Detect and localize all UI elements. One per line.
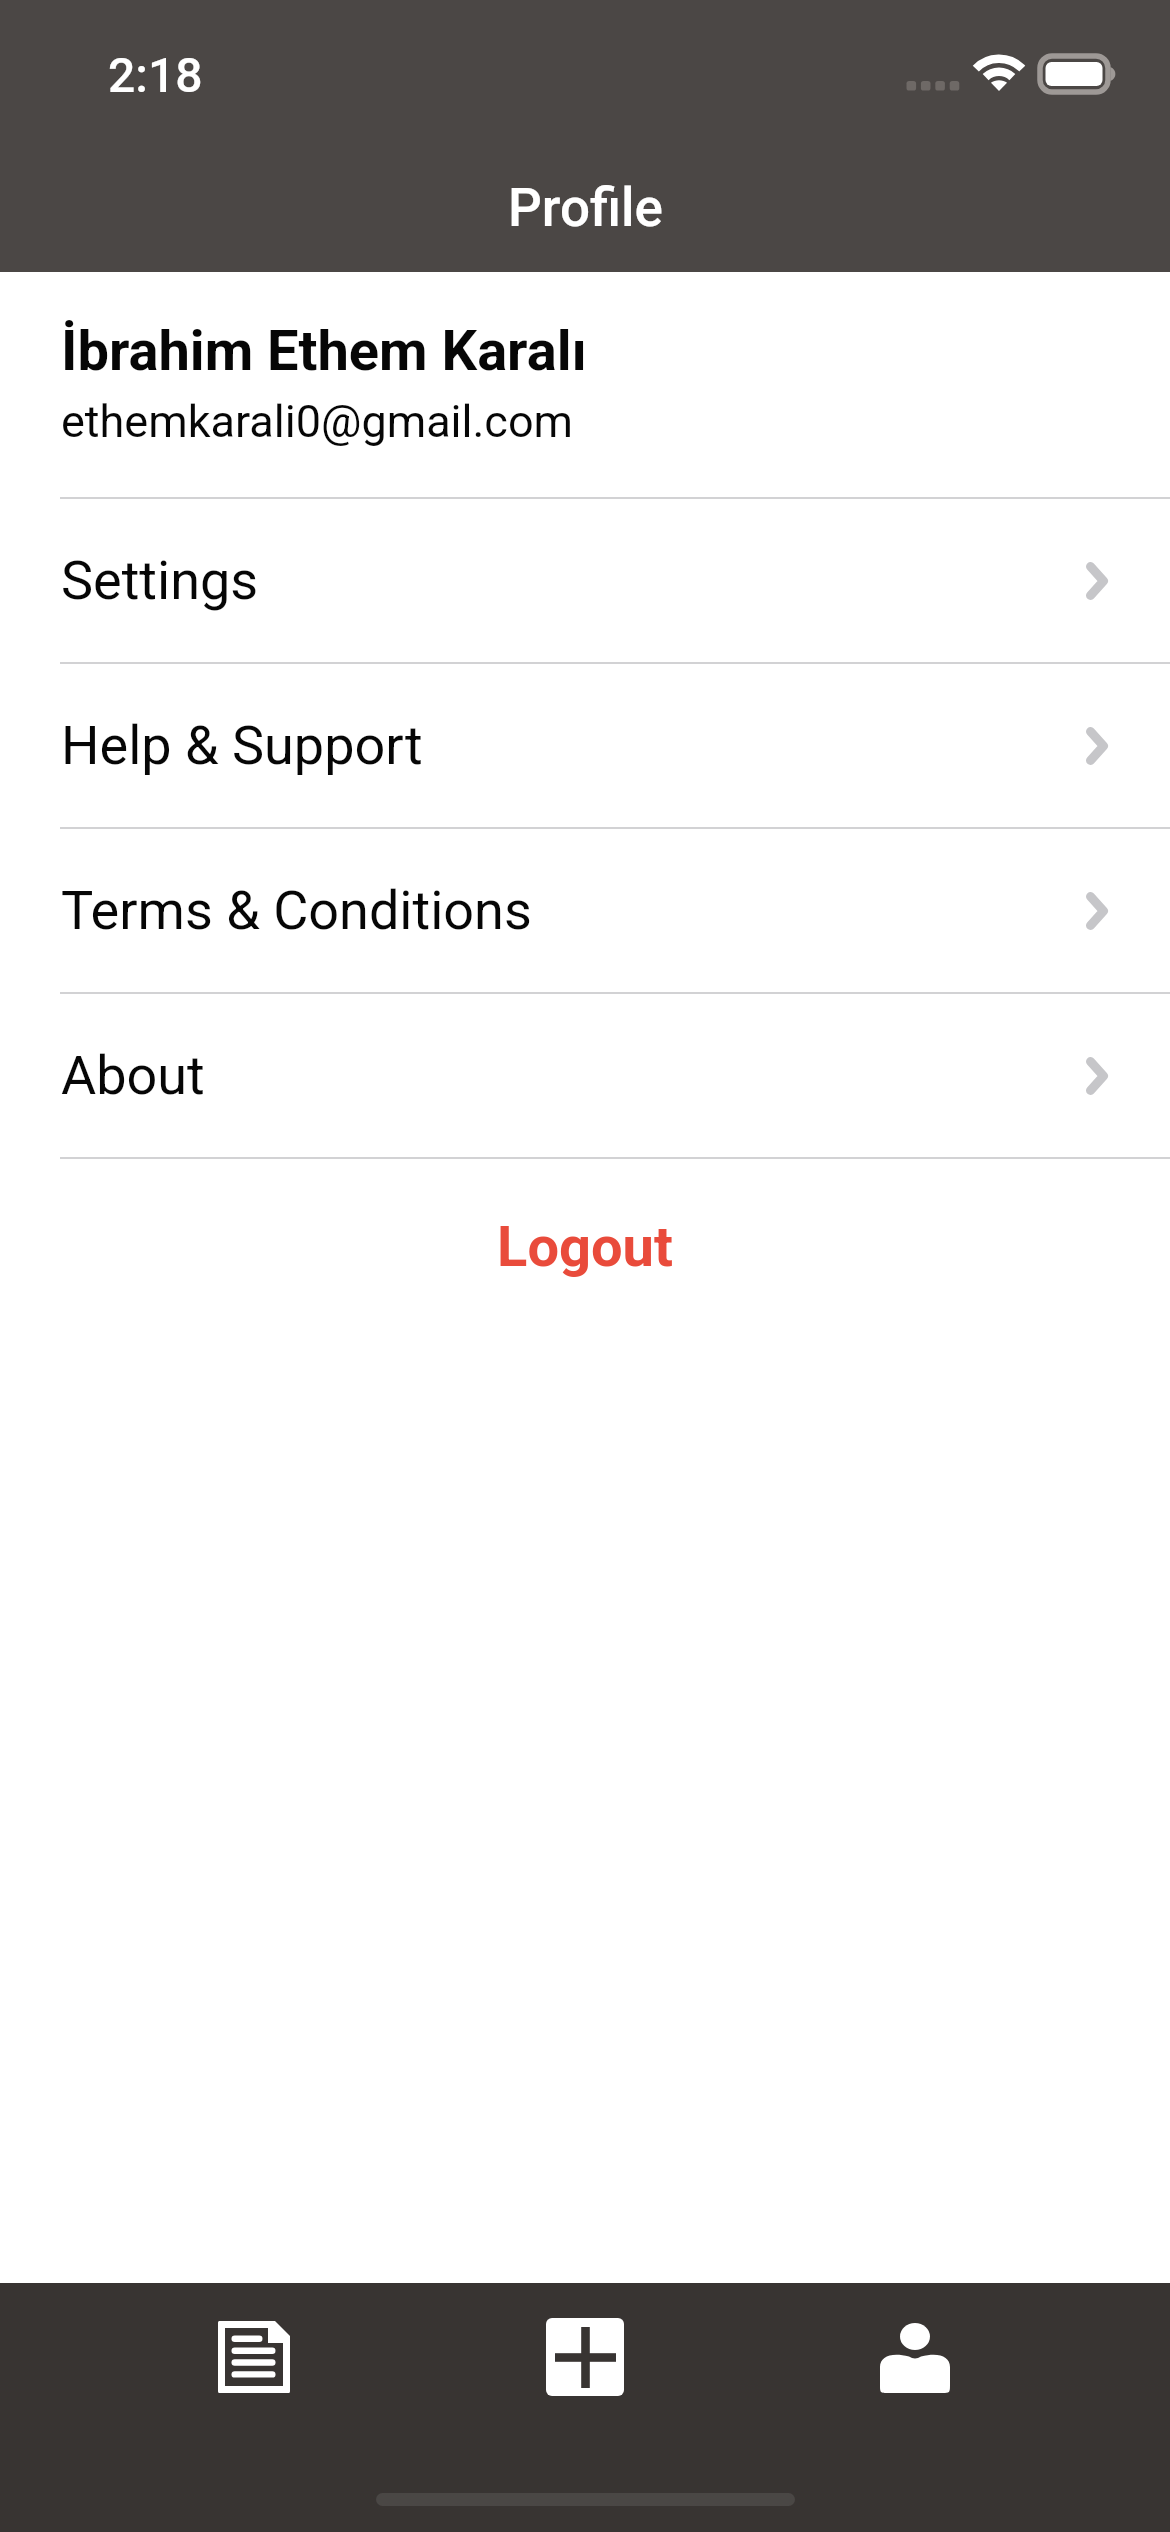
staticText: About	[61, 1044, 205, 1107]
staticText: Profile	[508, 177, 663, 239]
staticText: İbrahim Ethem Karalı	[61, 318, 587, 384]
button[interactable]: About	[0, 994, 1170, 1157]
button[interactable]: Add	[505, 2317, 665, 2397]
staticText: 2:18	[108, 47, 203, 103]
button[interactable]: Terms & Conditions	[0, 829, 1170, 992]
button[interactable]: Logout	[0, 1159, 1170, 1339]
button[interactable]: Help & Support	[0, 664, 1170, 827]
staticText: ethemkarali0@gmail.com	[61, 395, 574, 448]
button[interactable]: Profile	[835, 2318, 995, 2398]
button[interactable]: Documents	[174, 2317, 334, 2397]
button[interactable]: Settings	[0, 499, 1170, 662]
staticText: Settings	[61, 549, 259, 612]
staticText: Help & Support	[61, 714, 423, 777]
staticText: Logout	[497, 1214, 673, 1280]
staticText: Terms & Conditions	[61, 879, 532, 942]
